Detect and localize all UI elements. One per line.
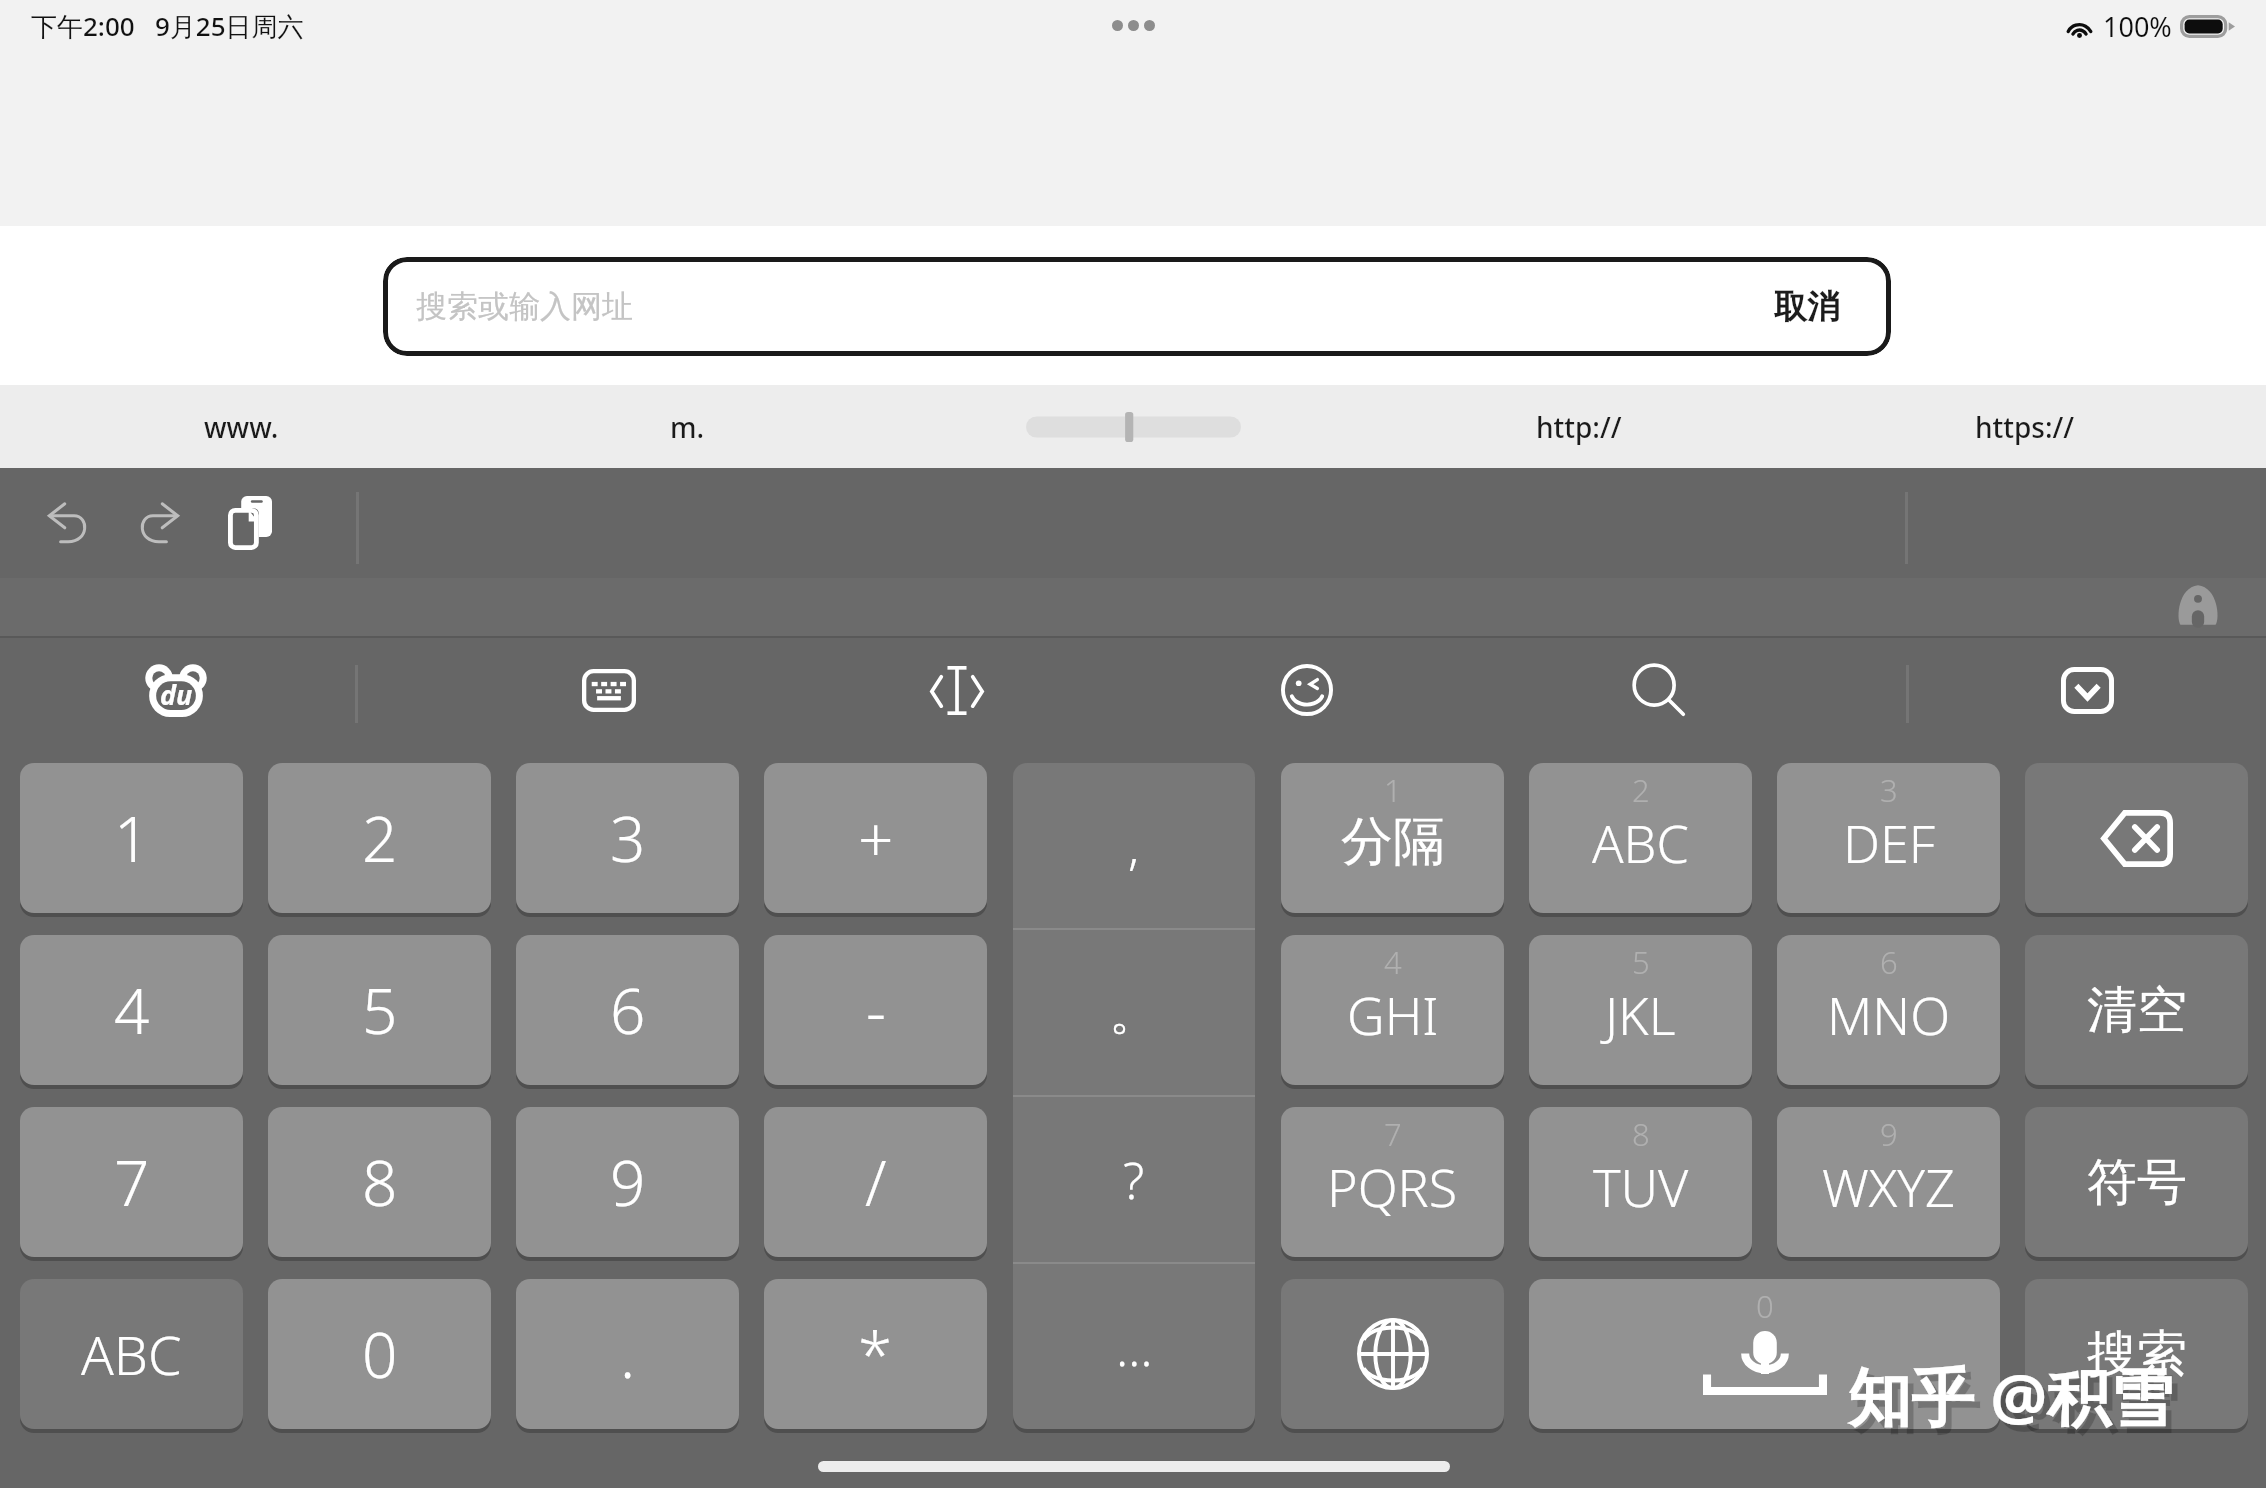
staticText: 2	[362, 796, 398, 880]
button[interactable]: 8	[1529, 1107, 1752, 1257]
staticText: 9月25日周六	[155, 8, 304, 44]
button[interactable]: .	[516, 1279, 739, 1429]
button[interactable]: /	[764, 1107, 987, 1257]
staticText: m.	[670, 408, 705, 446]
staticText: 0	[1756, 1285, 1774, 1327]
button[interactable]: Account	[2176, 583, 2224, 631]
staticText: 知乎 @积雪	[1854, 1360, 2179, 1446]
staticText: -	[866, 968, 886, 1052]
staticText: .	[620, 1312, 636, 1396]
button[interactable]: 1	[20, 763, 243, 913]
button[interactable]: Move cursor	[877, 610, 1037, 770]
staticText: 分隔	[1341, 809, 1445, 875]
button[interactable]: 3	[516, 763, 739, 913]
button[interactable]: Redo	[108, 473, 208, 573]
button[interactable]: Clipboard	[200, 473, 300, 573]
staticText: 搜索或输入网址	[416, 287, 633, 326]
button[interactable]: 搜索	[2025, 1279, 2248, 1429]
staticText: 1	[114, 796, 150, 880]
button[interactable]: 3	[1777, 763, 2000, 913]
staticText: ?	[1123, 1146, 1145, 1214]
button[interactable]: Search	[1579, 610, 1739, 770]
staticText: 7	[1384, 1113, 1402, 1155]
button[interactable]: 9	[516, 1107, 739, 1257]
button[interactable]: 6	[1777, 935, 2000, 1085]
button[interactable]: 符号	[2025, 1107, 2248, 1257]
staticText: 4	[1384, 941, 1402, 983]
button[interactable]: ?	[1013, 1097, 1255, 1262]
staticText: 4	[114, 968, 150, 1052]
staticText: 9	[610, 1140, 646, 1224]
button[interactable]: m.	[464, 385, 910, 468]
button[interactable]: 4	[1281, 935, 1504, 1085]
button[interactable]: ,	[1013, 763, 1255, 928]
staticText: *	[858, 1312, 893, 1396]
staticText: 。	[1109, 981, 1159, 1044]
button[interactable]: http://	[1356, 385, 1802, 468]
staticText: 2	[1632, 769, 1650, 811]
staticText: ,	[1128, 812, 1140, 880]
staticText: 取消	[1774, 286, 1840, 328]
button[interactable]: 搜索或输入网址	[383, 257, 1891, 356]
button[interactable]: *	[764, 1279, 987, 1429]
button[interactable]: Backspace	[2025, 763, 2248, 913]
staticText: 6	[1880, 941, 1898, 983]
staticText: PQRS	[1327, 1151, 1458, 1222]
staticText: 3	[610, 796, 646, 880]
button[interactable]: -	[764, 935, 987, 1085]
button[interactable]: Undo	[19, 473, 119, 573]
staticText: 6	[610, 968, 646, 1052]
staticText: 知乎 @积雪	[1848, 1353, 2173, 1439]
staticText: du	[160, 676, 193, 713]
staticText: TUV	[1593, 1151, 1689, 1222]
staticText: 8	[1632, 1113, 1650, 1155]
button[interactable]: 7	[1281, 1107, 1504, 1257]
staticText: www.	[204, 408, 279, 446]
button[interactable]: 0	[268, 1279, 491, 1429]
button[interactable]: https://	[1802, 385, 2248, 468]
button[interactable]: ABC	[20, 1279, 243, 1429]
button[interactable]: 6	[516, 935, 739, 1085]
button[interactable]: Space / voice input	[1529, 1279, 2000, 1429]
button[interactable]: 5	[268, 935, 491, 1085]
button[interactable]: 7	[20, 1107, 243, 1257]
button[interactable]: …	[1013, 1264, 1255, 1429]
staticText: ABC	[81, 1317, 182, 1391]
button[interactable]: 2	[268, 763, 491, 913]
staticText: /	[865, 1140, 887, 1224]
button[interactable]: 8	[268, 1107, 491, 1257]
button[interactable]: Hide keyboard	[2007, 610, 2167, 770]
staticText: GHI	[1347, 979, 1439, 1050]
staticText: 5	[1632, 941, 1650, 983]
staticText: 符号	[2087, 1151, 2187, 1214]
staticText: DEF	[1843, 807, 1935, 878]
button[interactable]: 5	[1529, 935, 1752, 1085]
staticText: https://	[1975, 408, 2075, 446]
staticText: 9	[1880, 1113, 1898, 1155]
button[interactable]: 2	[1529, 763, 1752, 913]
button[interactable]: Switch language	[1281, 1279, 1504, 1429]
button[interactable]: 4	[20, 935, 243, 1085]
staticText: 8	[362, 1140, 398, 1224]
staticText: http://	[1536, 408, 1622, 446]
staticText: ABC	[1592, 807, 1689, 878]
staticText: 0	[362, 1312, 398, 1396]
button[interactable]: www.	[18, 385, 464, 468]
button[interactable]: 。	[1013, 930, 1255, 1095]
staticText: 1	[1384, 769, 1402, 811]
staticText: 下午2:00	[31, 8, 135, 44]
button[interactable]: 9	[1777, 1107, 2000, 1257]
button[interactable]: +	[764, 763, 987, 913]
button[interactable]: 清空	[2025, 935, 2248, 1085]
staticText: JKL	[1605, 979, 1676, 1050]
staticText: WXYZ	[1822, 1151, 1955, 1222]
staticText: MNO	[1827, 979, 1951, 1050]
button[interactable]: Baidu input	[106, 620, 246, 760]
button[interactable]: 1	[1281, 763, 1504, 913]
staticText: 5	[362, 968, 398, 1052]
staticText: 清空	[2087, 979, 2187, 1042]
staticText: 7	[114, 1140, 150, 1224]
button[interactable]: Emoji	[1227, 610, 1387, 770]
button[interactable]: Keyboard layout	[529, 610, 689, 770]
staticText: …	[1116, 1313, 1153, 1381]
